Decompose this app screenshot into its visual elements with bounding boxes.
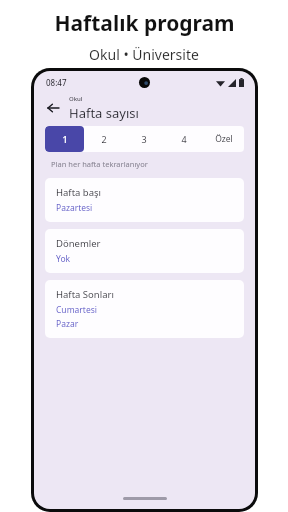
staticText: Yok [56, 253, 71, 265]
button[interactable]: Özel [204, 126, 244, 152]
button[interactable]: 4 [164, 126, 204, 152]
staticText: 08:47 [46, 77, 67, 88]
staticText: Okul • Üniversite [89, 45, 199, 64]
button[interactable]: 3 [124, 126, 164, 152]
staticText: Hafta başı [56, 186, 102, 199]
staticText: Plan her hafta tekrarlanıyor [51, 159, 148, 169]
staticText: Hafta sayısı [69, 104, 139, 122]
staticText: Pazar [56, 318, 79, 330]
staticText: 3 [141, 133, 147, 145]
staticText: Cumartesi [56, 304, 97, 316]
staticText: 1 [62, 133, 68, 145]
staticText: Okul [69, 95, 83, 103]
button[interactable]: Hafta başı [45, 178, 244, 222]
button[interactable]: Dönemler [45, 229, 244, 273]
staticText: Hafta Sonları [56, 288, 114, 301]
staticText: 2 [101, 133, 107, 145]
button[interactable]: Back [42, 97, 64, 119]
staticText: Haftalık program [54, 9, 235, 38]
button[interactable]: 2 [84, 126, 124, 152]
staticText: Dönemler [56, 237, 101, 250]
button[interactable]: 1 [45, 126, 84, 152]
staticText: 4 [181, 133, 187, 145]
staticText: Pazartesi [56, 202, 93, 214]
staticText: Özel [215, 133, 233, 145]
button[interactable]: Hafta Sonları [45, 280, 244, 338]
